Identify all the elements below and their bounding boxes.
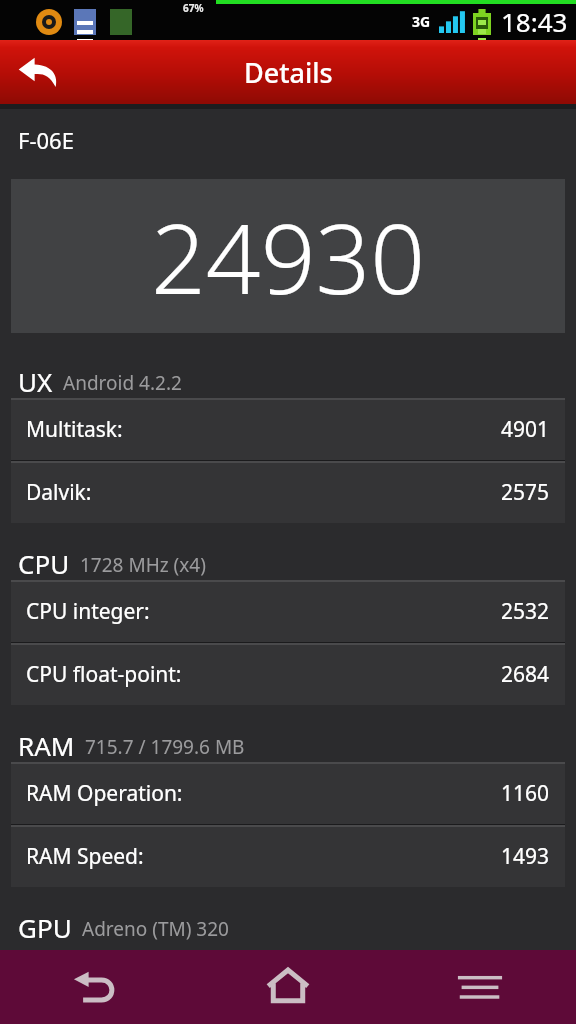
- staticText: RAM: [18, 728, 75, 763]
- button[interactable]: RAM Speed:: [11, 826, 565, 887]
- button[interactable]: Multitask:: [11, 399, 565, 460]
- button[interactable]: Menu: [384, 950, 576, 1024]
- staticText: 2684: [501, 660, 550, 689]
- staticText: CPU float-point:: [26, 660, 182, 689]
- staticText: 18:43: [501, 4, 568, 39]
- button[interactable]: 24930: [11, 179, 565, 333]
- staticText: Dalvik:: [26, 478, 92, 507]
- staticText: GPU: [18, 910, 72, 945]
- staticText: 4901: [501, 415, 550, 444]
- staticText: UX: [18, 364, 53, 399]
- staticText: 2575: [501, 478, 550, 507]
- button[interactable]: RAM Operation:: [11, 763, 565, 824]
- staticText: 24930: [151, 191, 426, 322]
- staticText: 2532: [501, 597, 550, 626]
- staticText: Details: [244, 54, 333, 91]
- staticText: CPU: [18, 546, 70, 581]
- staticText: RAM Operation:: [26, 779, 183, 808]
- staticText: F-06E: [18, 125, 74, 155]
- button[interactable]: Back: [0, 950, 192, 1024]
- staticText: 1160: [501, 779, 550, 808]
- staticText: 1493: [501, 842, 550, 871]
- staticText: 715.7 / 1799.6 MB: [85, 734, 245, 760]
- button[interactable]: CPU float-point:: [11, 644, 565, 705]
- button[interactable]: Back: [8, 42, 68, 102]
- staticText: 67%: [183, 1, 204, 15]
- button[interactable]: Home: [192, 950, 384, 1024]
- button[interactable]: Dalvik:: [11, 462, 565, 523]
- button[interactable]: CPU integer:: [11, 581, 565, 642]
- staticText: Adreno (TM) 320: [82, 916, 229, 942]
- staticText: Multitask:: [26, 415, 123, 444]
- staticText: Android 4.2.2: [63, 370, 182, 396]
- staticText: CPU integer:: [26, 597, 150, 626]
- staticText: RAM Speed:: [26, 842, 144, 871]
- staticText: 1728 MHz (x4): [80, 552, 206, 578]
- staticText: 3G: [412, 12, 431, 31]
